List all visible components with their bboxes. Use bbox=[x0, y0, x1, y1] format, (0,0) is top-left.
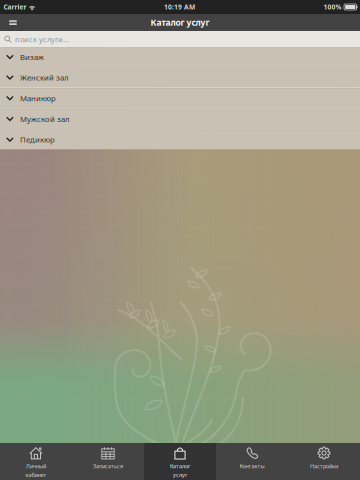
staticText: Контакты bbox=[239, 462, 264, 470]
staticText: кабинет bbox=[25, 471, 46, 478]
staticText: Мужской зал bbox=[20, 114, 70, 124]
staticText: услуг bbox=[173, 471, 187, 478]
button[interactable]: Menu bbox=[3, 14, 23, 31]
staticText: Личный bbox=[26, 462, 46, 470]
staticText: Каталог услуг bbox=[150, 17, 209, 28]
button[interactable]: Контакты bbox=[216, 443, 288, 480]
button[interactable]: Записаться bbox=[72, 443, 144, 480]
staticText: Каталог bbox=[170, 462, 190, 470]
staticText: Педикюр bbox=[20, 134, 55, 145]
button[interactable]: поиск услуги... bbox=[0, 31, 360, 47]
staticText: Carrier bbox=[3, 2, 26, 12]
staticText: Настройки bbox=[310, 462, 338, 470]
button[interactable]: Мужской зал bbox=[0, 108, 360, 129]
button[interactable]: Каталог bbox=[144, 443, 216, 480]
button[interactable]: Визаж bbox=[0, 47, 360, 66]
staticText: 100% bbox=[323, 2, 341, 12]
button[interactable]: Настройки bbox=[288, 443, 360, 480]
staticText: поиск услуги... bbox=[15, 34, 69, 44]
staticText: Визаж bbox=[20, 52, 44, 62]
button[interactable]: Педикюр bbox=[0, 129, 360, 149]
button[interactable]: Личный bbox=[0, 443, 72, 480]
button[interactable]: Маникюр bbox=[0, 87, 360, 108]
staticText: Женский зал bbox=[20, 72, 69, 83]
staticText: Маникюр bbox=[20, 93, 56, 103]
staticText: 10:19 AM bbox=[164, 2, 195, 12]
staticText: Записаться bbox=[93, 462, 123, 470]
button[interactable]: Женский зал bbox=[0, 66, 360, 87]
